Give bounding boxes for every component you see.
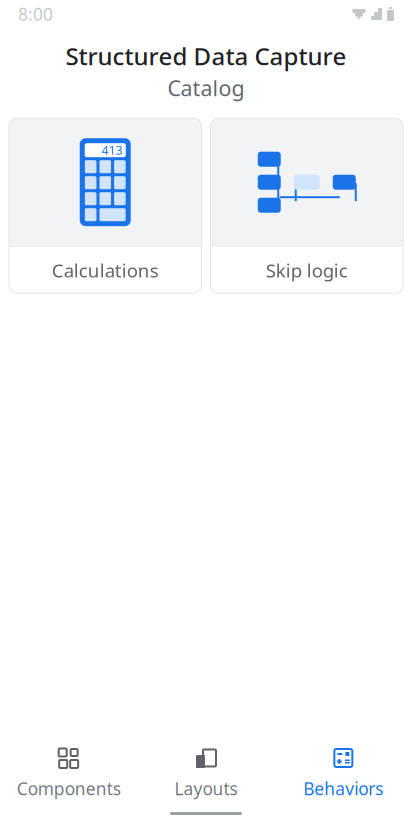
button[interactable]: Components — [0, 741, 137, 806]
button[interactable]: Skip logic — [210, 118, 403, 293]
staticText: Calculations — [52, 258, 159, 283]
staticText: Behaviors — [303, 777, 383, 800]
staticText: 8:00 — [18, 2, 53, 25]
staticText: Structured Data Capture — [65, 40, 346, 72]
button[interactable]: 413 — [9, 118, 201, 293]
staticText: 413 — [102, 142, 123, 158]
staticText: Skip logic — [266, 258, 348, 283]
staticText: Catalog — [167, 74, 244, 102]
button[interactable]: Layouts — [137, 741, 275, 806]
staticText: Components — [17, 777, 121, 800]
staticText: Layouts — [174, 777, 237, 800]
button[interactable]: Behaviors — [275, 741, 412, 806]
